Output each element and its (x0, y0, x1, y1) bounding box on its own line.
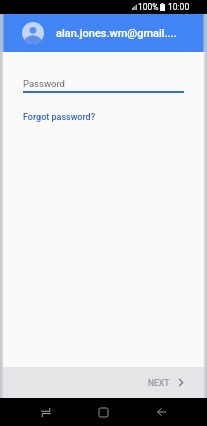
button[interactable]: Forgot password? (23, 110, 96, 125)
staticText: Password (23, 78, 65, 89)
button[interactable]: Home (74, 398, 132, 426)
button[interactable]: alan.jones.wm@gmail.... (0, 14, 207, 52)
staticText: Forgot password? (23, 112, 96, 123)
button[interactable]: NEXT (136, 367, 207, 398)
button[interactable]: Back (132, 398, 190, 426)
staticText: alan.jones.wm@gmail.... (56, 27, 177, 40)
staticText: NEXT (148, 378, 170, 388)
staticText: 10:00 (168, 2, 190, 12)
staticText: 100% (138, 2, 159, 12)
button[interactable]: Recent apps (17, 398, 74, 426)
